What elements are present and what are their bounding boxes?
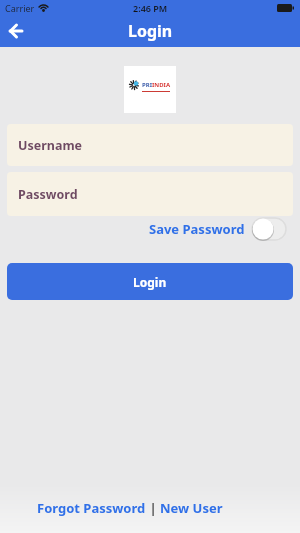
staticText: Carrier [5, 2, 35, 14]
button[interactable]: Password [7, 172, 293, 216]
staticText: INDIA [152, 81, 171, 89]
staticText: Password [18, 186, 78, 203]
staticText: Username [18, 137, 83, 154]
staticText: Save Password [149, 220, 245, 238]
button[interactable]: Username [7, 124, 293, 166]
staticText: | [146, 499, 160, 517]
button[interactable]: Login [7, 263, 293, 300]
staticText: 2:46 PM [133, 2, 168, 14]
staticText: Login [133, 274, 167, 290]
button[interactable] [0, 15, 32, 47]
button[interactable]: Forgot Password [37, 499, 146, 517]
button[interactable] [252, 218, 286, 240]
button[interactable]: New User [160, 499, 223, 517]
staticText: Login [128, 20, 173, 42]
staticText: PRI [142, 81, 152, 89]
